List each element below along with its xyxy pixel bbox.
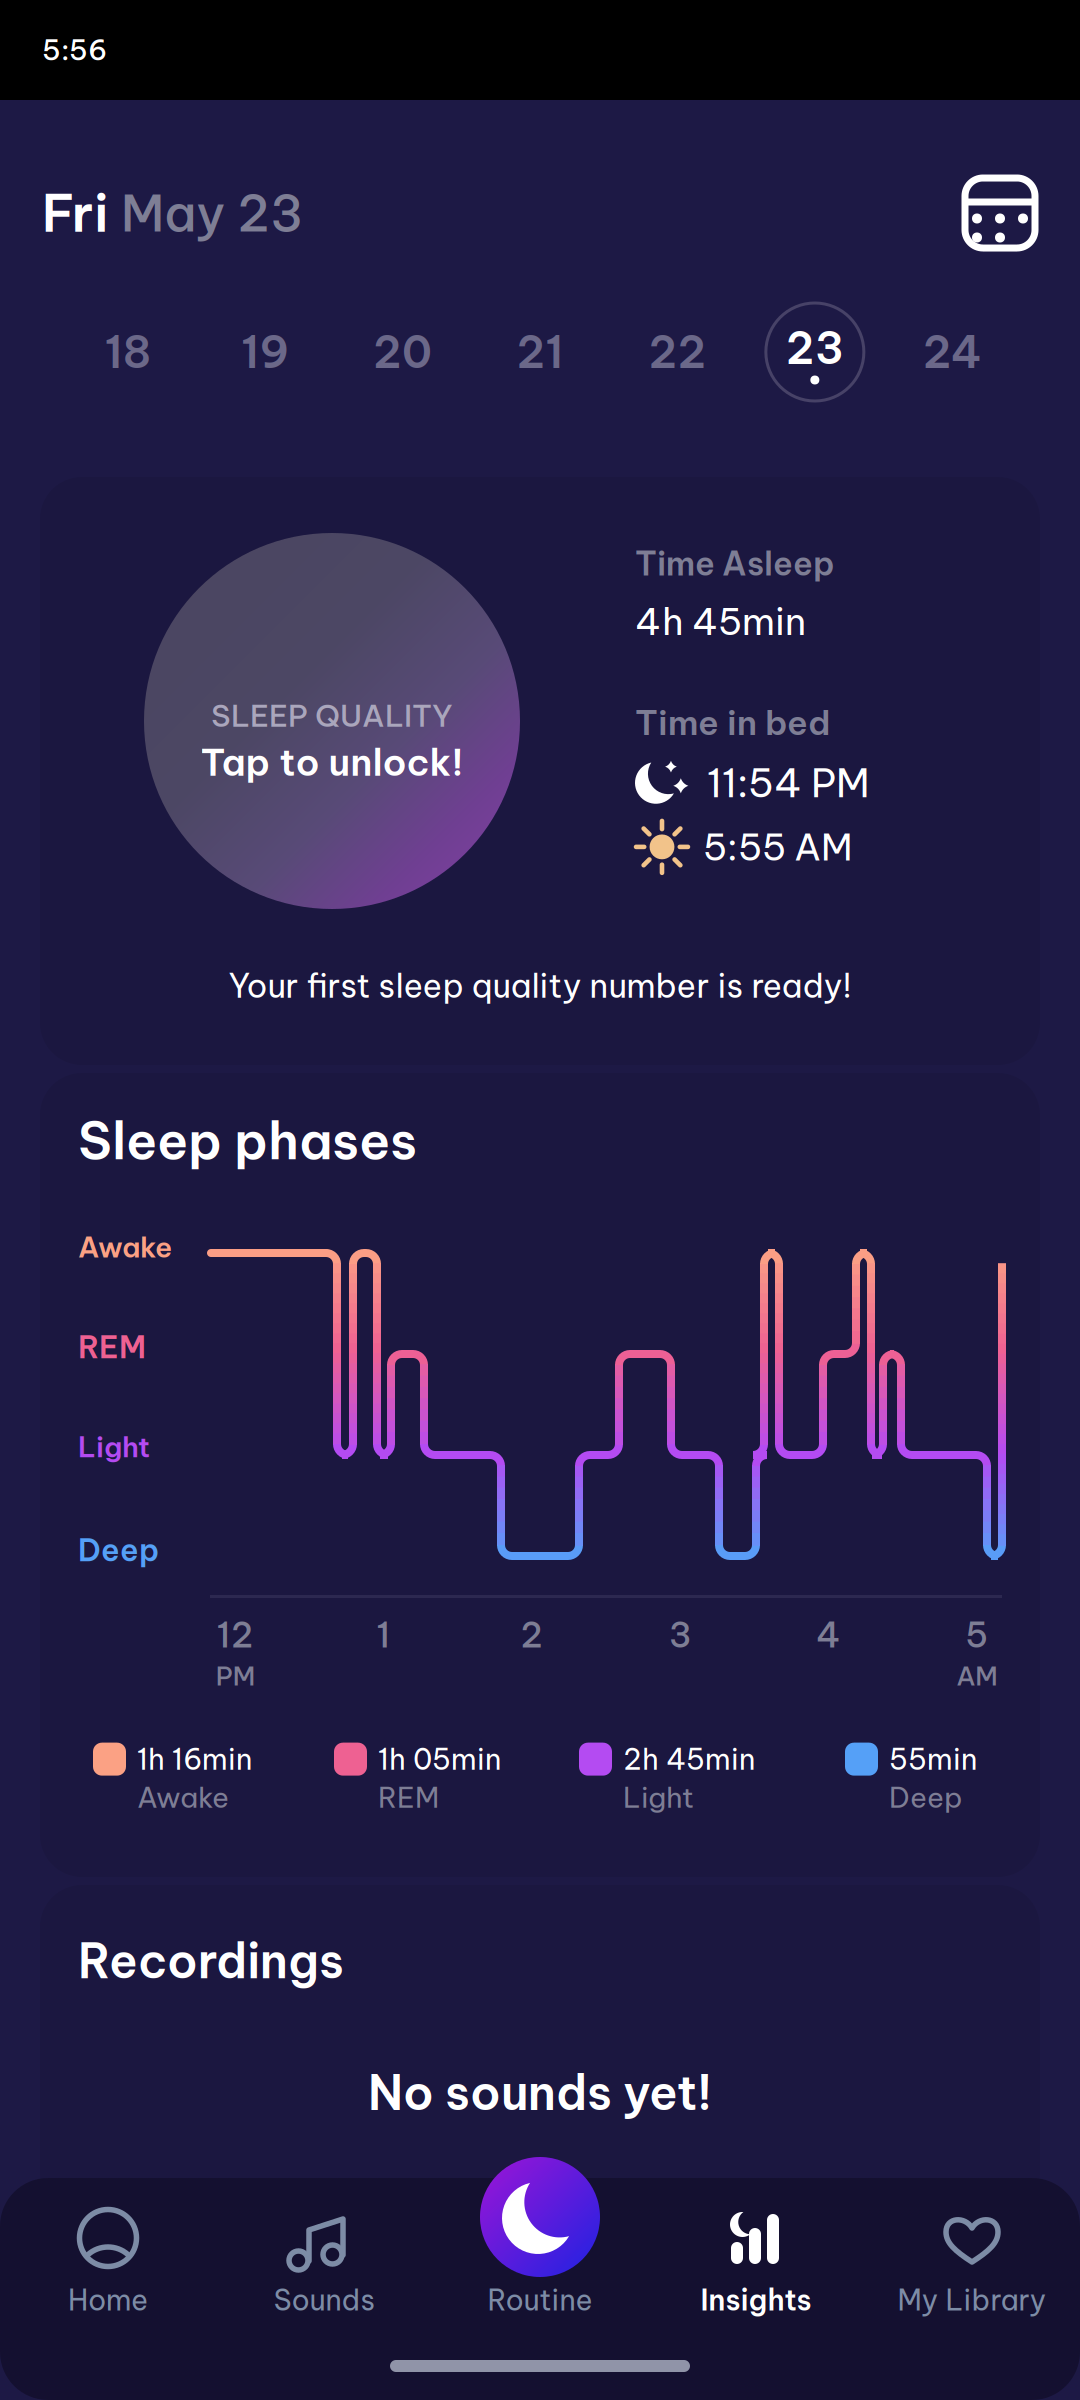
button[interactable]: 24	[884, 297, 1021, 407]
button[interactable]: My Library	[864, 2198, 1080, 2348]
staticText: 55min	[889, 1741, 977, 1777]
button[interactable]: Home	[0, 2198, 216, 2348]
button[interactable]: 19	[196, 297, 334, 407]
staticText: 5:55 AM	[703, 823, 853, 870]
staticText: Routine	[487, 2282, 592, 2318]
staticText: 11:54 PM	[707, 758, 870, 808]
button[interactable]: Insights	[648, 2198, 864, 2348]
staticText: Sounds	[273, 2282, 374, 2318]
staticText: 23	[786, 321, 844, 375]
staticText: Sleep phases	[78, 1108, 417, 1173]
button[interactable]: Routine	[432, 2198, 648, 2348]
staticText: May 23	[109, 181, 303, 245]
staticText: 21	[516, 325, 563, 379]
button[interactable]: 18	[59, 297, 196, 407]
staticText: Recordings	[78, 1931, 344, 1991]
staticText: Fri	[42, 180, 109, 245]
staticText: 19	[241, 325, 289, 379]
staticText: 1h 16min	[137, 1741, 252, 1777]
staticText: Deep	[78, 1531, 159, 1569]
staticText: AM	[956, 1659, 997, 1692]
button[interactable]: 23	[746, 297, 883, 407]
staticText: 24	[923, 325, 982, 379]
staticText: 1h 05min	[378, 1741, 501, 1777]
button[interactable]: 21	[471, 297, 609, 407]
button[interactable]: Calendar	[962, 175, 1038, 251]
staticText: 2	[520, 1613, 543, 1656]
staticText: SLEEP QUALITY	[211, 696, 453, 735]
staticText: 20	[373, 325, 432, 379]
staticText: Awake	[78, 1229, 172, 1265]
staticText: 2h 45min	[623, 1741, 755, 1777]
staticText: PM	[216, 1659, 255, 1692]
staticText: 4h 45min	[635, 598, 806, 645]
button[interactable]: 20	[334, 297, 471, 407]
button[interactable]: 22	[609, 297, 746, 407]
staticText: Your first sleep quality number is ready…	[228, 965, 851, 1006]
staticText: REM	[78, 1327, 146, 1366]
staticText: Insights	[700, 2282, 811, 2318]
staticText: 18	[105, 325, 151, 379]
staticText: 22	[648, 325, 706, 379]
staticText: 4	[816, 1613, 841, 1656]
staticText: Time in bed	[635, 701, 831, 744]
button[interactable]: Sounds	[216, 2198, 432, 2348]
button[interactable]: Routine	[480, 2157, 600, 2277]
staticText: Time Asleep	[635, 543, 835, 584]
staticText: 5	[965, 1613, 988, 1656]
staticText: Deep	[889, 1779, 963, 1815]
staticText: 3	[669, 1613, 692, 1656]
staticText: 1	[376, 1613, 390, 1656]
staticText: My Library	[897, 2282, 1046, 2318]
staticText: No sounds yet!	[368, 2063, 712, 2122]
staticText: Home	[68, 2282, 148, 2318]
button[interactable]: SLEEP QUALITY	[144, 533, 520, 909]
staticText: 12	[217, 1613, 254, 1656]
staticText: 5:56	[42, 32, 107, 68]
staticText: Awake	[137, 1779, 229, 1815]
staticText: Light	[78, 1429, 150, 1465]
staticText: Tap to unlock!	[200, 739, 463, 786]
staticText: Light	[623, 1779, 694, 1815]
staticText: REM	[378, 1779, 439, 1815]
